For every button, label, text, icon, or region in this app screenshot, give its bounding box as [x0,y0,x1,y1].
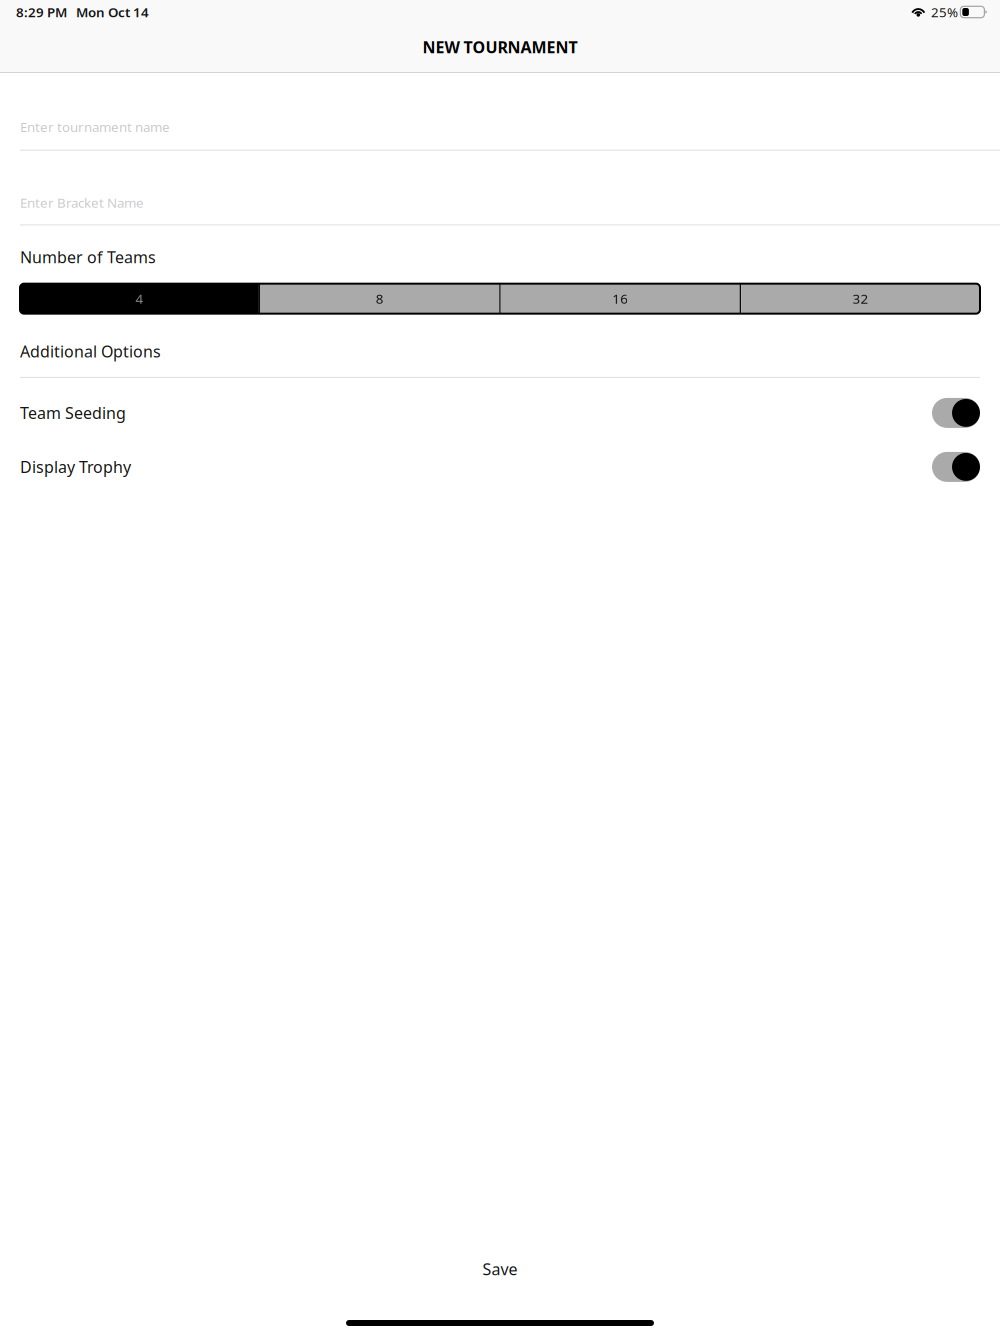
staticText: Enter Bracket Name [20,194,144,211]
button[interactable]: 4 [20,284,259,314]
button[interactable]: Enter Bracket Name [0,151,1000,225]
staticText: Save [482,1258,517,1280]
button[interactable]: Team Seeding [0,386,1000,440]
staticText: Display Trophy [20,456,131,477]
button[interactable]: Save [0,1249,1000,1289]
staticText: Number of Teams [20,246,156,268]
button[interactable]: Enter tournament name [0,73,1000,151]
staticText: 4 [135,290,143,307]
staticText: NEW TOURNAMENT [422,36,577,58]
staticText: 8 [376,290,384,307]
staticText: 32 [853,290,869,307]
staticText: 8:29 PM [16,3,67,21]
staticText: 25% [931,3,958,21]
button[interactable]: 16 [501,284,740,314]
button[interactable]: 8 [260,284,499,314]
staticText: Additional Options [20,341,161,362]
staticText: Enter tournament name [20,118,170,136]
staticText: 16 [612,290,628,307]
staticText: Team Seeding [20,402,126,423]
button[interactable]: Display Trophy [0,440,1000,494]
button[interactable]: 32 [741,284,980,314]
staticText: Mon Oct 14 [76,3,149,21]
